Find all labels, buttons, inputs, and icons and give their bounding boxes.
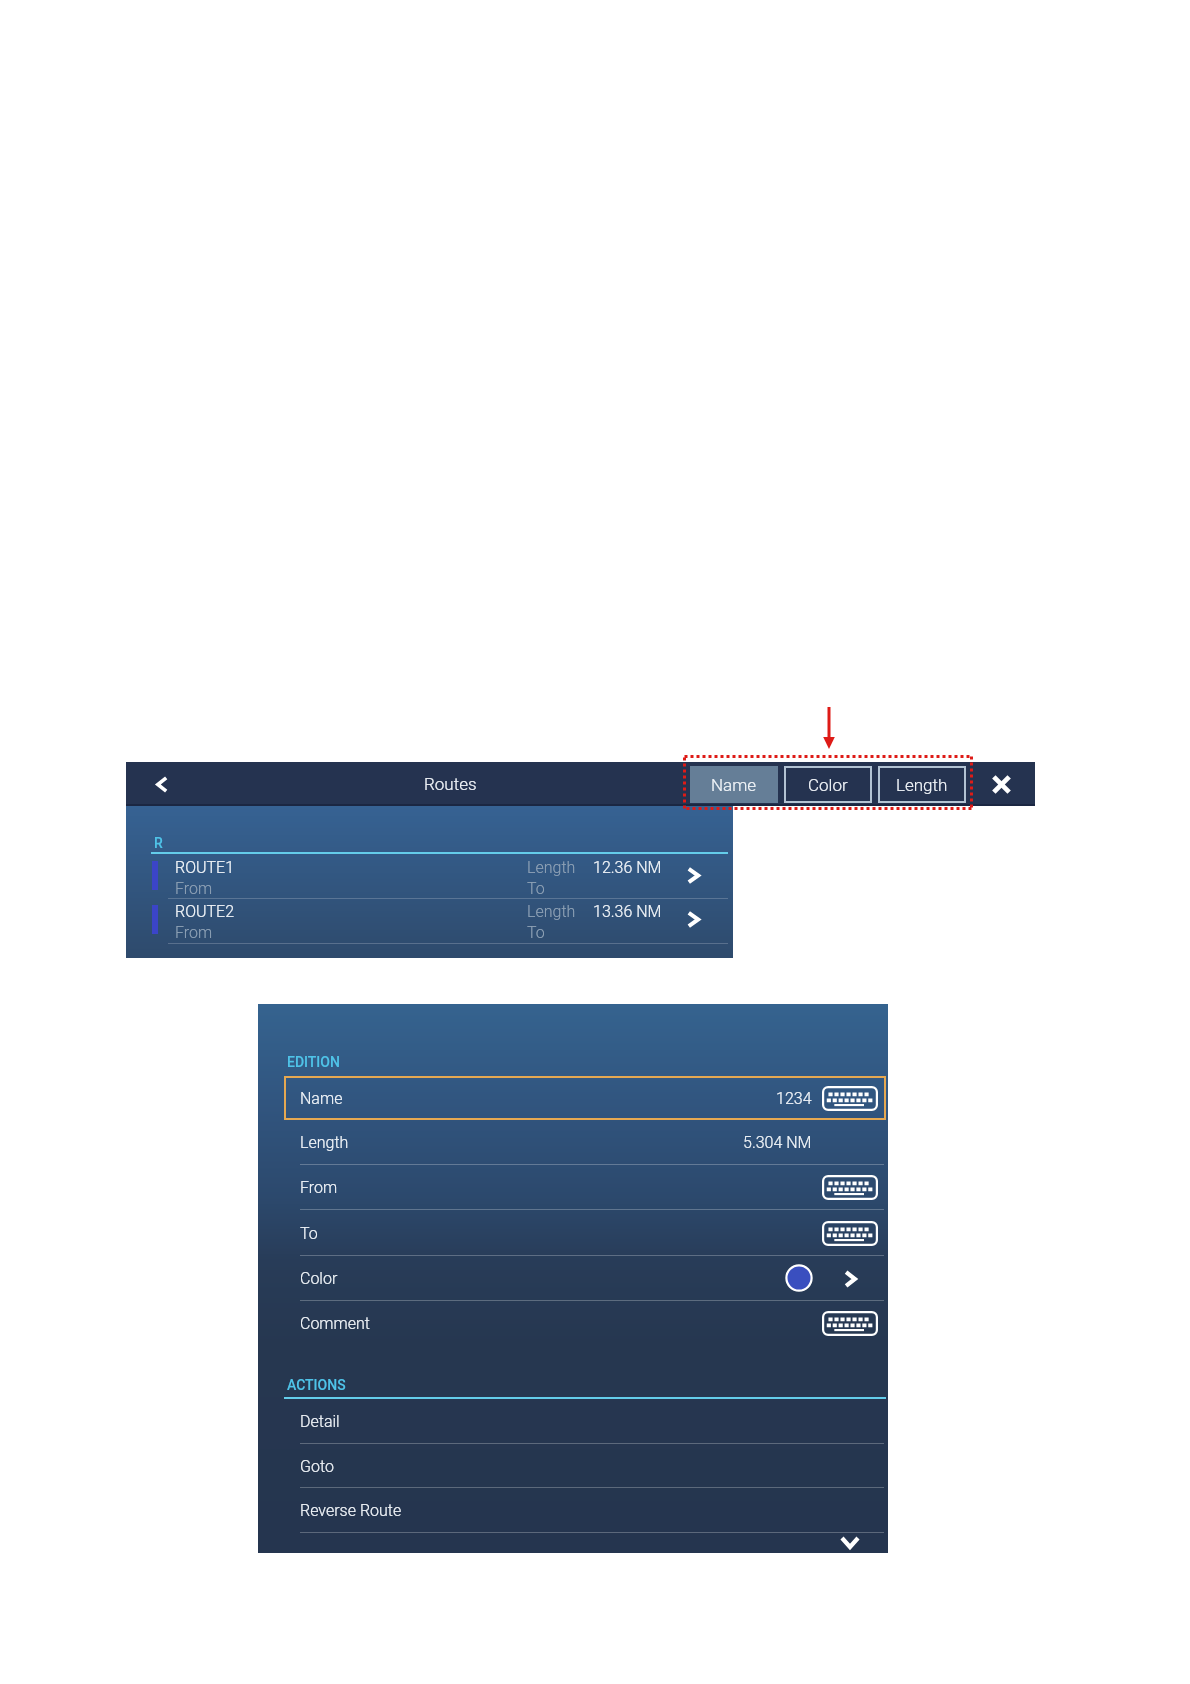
staticText: To <box>527 923 545 942</box>
staticText: 13.36 NM <box>593 902 662 921</box>
staticText: Length <box>527 902 576 921</box>
staticText: 1234 <box>776 1089 812 1108</box>
button[interactable]: Detail <box>284 1399 886 1444</box>
staticText: EDITION <box>287 1054 340 1070</box>
staticText: Detail <box>300 1412 340 1431</box>
button[interactable]: Color <box>784 766 872 803</box>
staticText: Length <box>527 858 576 877</box>
staticText: From <box>175 923 213 942</box>
button[interactable]: Length <box>284 1120 886 1165</box>
staticText: ROUTE2 <box>175 902 235 921</box>
button[interactable]: Edit with keyboard <box>818 1210 882 1256</box>
button[interactable]: Edit with keyboard <box>818 1165 882 1210</box>
staticText: Length <box>300 1133 349 1152</box>
staticText: To <box>527 879 545 898</box>
staticText: Length <box>896 775 948 795</box>
staticText: Comment <box>300 1314 370 1333</box>
staticText: Name <box>711 775 757 795</box>
staticText: ACTIONS <box>287 1377 346 1393</box>
staticText: Name <box>300 1089 343 1108</box>
button[interactable]: To <box>284 1210 886 1256</box>
button[interactable]: Length <box>878 766 966 803</box>
staticText: From <box>300 1178 338 1197</box>
staticText: Color <box>300 1269 338 1288</box>
button[interactable]: Close <box>977 762 1025 806</box>
staticText: ROUTE1 <box>175 858 235 877</box>
staticText: Goto <box>300 1457 334 1476</box>
staticText: Reverse Route <box>300 1501 402 1520</box>
button[interactable]: Goto <box>284 1444 886 1488</box>
staticText: To <box>300 1224 318 1243</box>
button[interactable]: Edit with keyboard <box>818 1076 882 1120</box>
staticText: Routes <box>424 774 477 794</box>
button[interactable]: Comment <box>284 1301 886 1346</box>
button[interactable]: ROUTE1 <box>126 854 733 898</box>
button[interactable]: Name <box>690 766 778 803</box>
staticText: 12.36 NM <box>593 858 662 877</box>
button[interactable]: ROUTE2 <box>126 898 733 942</box>
button[interactable]: Color <box>284 1256 886 1301</box>
staticText: 5.304 NM <box>743 1133 812 1152</box>
button[interactable]: From <box>284 1165 886 1210</box>
staticText: R <box>154 835 163 851</box>
staticText: Color <box>808 775 848 795</box>
button[interactable]: Name <box>284 1076 886 1120</box>
staticText: From <box>175 879 213 898</box>
button[interactable]: Reverse Route <box>284 1488 886 1533</box>
button[interactable]: Edit with keyboard <box>818 1301 882 1346</box>
button[interactable]: Back <box>139 762 185 806</box>
